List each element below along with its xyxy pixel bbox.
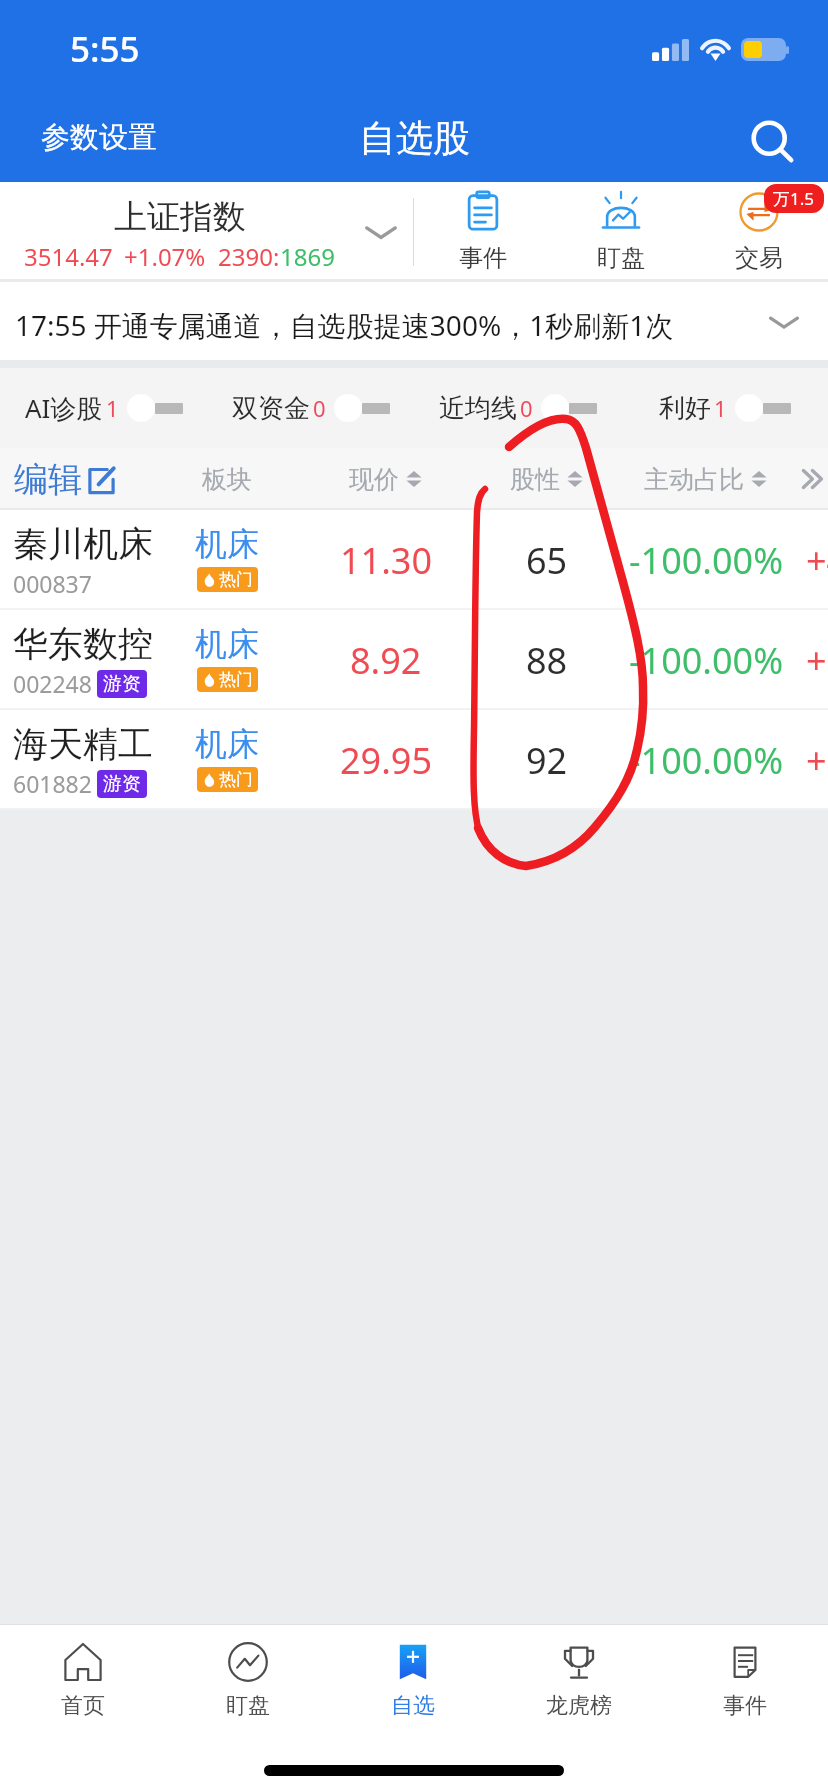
button[interactable]: 秦川机床 [0,510,828,610]
staticText: 华东数控 [13,622,153,666]
staticText: 0 [520,393,533,423]
staticText: 5:55 [70,25,140,73]
staticText: 65 [526,536,568,585]
button[interactable]: 华东数控 [0,610,828,710]
staticText: 编辑 [14,458,82,501]
staticText: 事件 [459,243,507,273]
staticText: 首页 [61,1692,105,1720]
staticText: 0 [313,393,326,423]
button[interactable]: 盯盘 [165,1625,330,1733]
button[interactable]: AI诊股 [0,368,207,448]
staticText: 盯盘 [226,1692,270,1720]
button[interactable]: 编辑 [14,448,162,510]
button[interactable]: 首页 [0,1625,165,1733]
staticText: : [273,240,280,273]
button[interactable]: 近均线 [414,368,621,448]
staticText: 上证指数 [114,196,246,238]
staticText: 交易 [735,243,783,273]
staticText: 自选股 [359,115,470,162]
button[interactable]: 龙虎榜 [496,1625,662,1733]
staticText: 游资 [103,672,141,696]
button[interactable]: 事件 [662,1625,828,1733]
staticText: 热门 [219,569,253,590]
button[interactable]: 双资金 [207,368,414,448]
button[interactable]: 现价 [292,448,480,510]
button[interactable]: 自选 [330,1625,496,1733]
staticText: 双资金 [232,392,310,425]
staticText: 秦川机床 [13,522,153,566]
staticText: 88 [526,636,568,685]
button[interactable]: 参数设置 [0,91,187,182]
staticText: -100.00% [629,536,784,585]
staticText: 机床 [195,624,259,664]
button[interactable]: 17:55 开通专属通道，自选股提速300%，1秒刷新1次 [0,282,828,368]
staticText: -100.00% [629,636,784,685]
staticText: 1 [106,393,119,423]
staticText: 17:55 开通专属通道，自选股提速300%，1秒刷新1次 [15,306,674,344]
staticText: 龙虎榜 [546,1692,612,1720]
staticText: 29.95 [340,736,433,785]
staticText: 机床 [195,524,259,564]
staticText: +1 [806,736,828,785]
button[interactable]: 交易 [690,182,828,282]
staticText: 参数设置 [41,119,157,156]
staticText: 现价 [349,464,399,495]
staticText: 601882 [13,768,92,799]
staticText: 热门 [219,769,253,790]
staticText: 万1.5 [773,187,815,210]
staticText: 92 [526,736,568,785]
staticText: 1 [714,393,727,423]
staticText: 事件 [723,1692,767,1720]
staticText: 1869 [280,240,335,273]
staticText: 2390 [218,240,273,273]
staticText: 3514.47 [24,240,113,273]
button[interactable]: Search [728,91,828,182]
button[interactable]: 板块 [162,448,292,510]
staticText: 股性 [510,464,560,495]
staticText: 游资 [103,772,141,796]
button[interactable]: 股性 [480,448,614,510]
staticText: 主动占比 [644,464,744,495]
staticText: 机床 [195,724,259,764]
staticText: -100.00% [629,736,784,785]
button[interactable]: 利好 [621,368,828,448]
button[interactable]: 事件 [414,182,552,282]
button[interactable]: 主动占比 [614,448,798,510]
staticText: 盯盘 [597,243,645,273]
staticText: 11.30 [340,536,433,585]
staticText: 利好 [659,392,711,425]
staticText: 近均线 [439,392,517,425]
staticText: 自选 [391,1692,435,1720]
button[interactable]: 上证指数 [0,182,414,282]
staticText: 热门 [219,669,253,690]
staticText: +1.07% [124,240,206,273]
staticText: AI诊股 [25,390,103,426]
staticText: 002248 [13,668,92,699]
button[interactable]: 海天精工 [0,710,828,810]
staticText: 海天精工 [13,722,153,766]
staticText: 000837 [13,568,92,599]
button[interactable]: 盯盘 [552,182,690,282]
staticText: 板块 [202,464,252,495]
staticText: 8.92 [350,636,422,685]
staticText: +3 [806,636,828,685]
staticText: +4 [806,536,828,585]
